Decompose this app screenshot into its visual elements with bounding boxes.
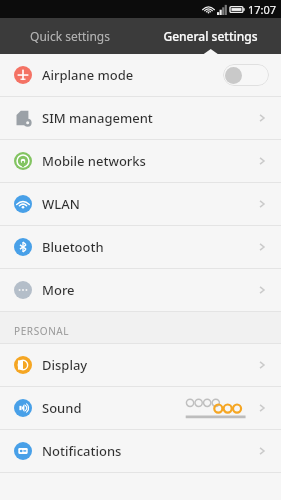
other: Open SIM management (255, 111, 269, 125)
button[interactable]: More (0, 269, 281, 311)
staticText: PERSONAL (14, 324, 70, 338)
button[interactable]: Display (0, 344, 281, 386)
staticText: General settings (163, 28, 258, 44)
other: Open WLAN (255, 197, 269, 211)
staticText: Mobile networks (42, 152, 146, 170)
button[interactable]: General settings (140, 18, 281, 54)
other: Open Notifications (255, 444, 269, 458)
staticText: Airplane mode (42, 66, 134, 84)
button[interactable]: Mobile networks (0, 140, 281, 182)
staticText: Display (42, 356, 88, 374)
button[interactable]: SIM management (0, 97, 281, 139)
other: Open Bluetooth (255, 240, 269, 254)
other: Open Display (255, 358, 269, 372)
staticText: 17:07 (248, 2, 277, 17)
staticText: Quick settings (30, 28, 110, 44)
other: Open Sound (255, 401, 269, 415)
staticText: SIM management (42, 109, 153, 127)
button[interactable]: Notifications (0, 430, 281, 472)
staticText: WLAN (42, 195, 80, 213)
button[interactable]: Airplane mode toggle (223, 64, 269, 86)
button[interactable]: Airplane mode (0, 54, 281, 96)
staticText: More (42, 281, 75, 299)
button[interactable]: Quick settings (0, 18, 140, 54)
button[interactable]: Sound (0, 387, 281, 429)
button[interactable]: Bluetooth (0, 226, 281, 268)
staticText: Notifications (42, 442, 122, 460)
staticText: Sound (42, 399, 82, 417)
other: Open More (255, 283, 269, 297)
button[interactable]: WLAN (0, 183, 281, 225)
other: Open Mobile networks (255, 154, 269, 168)
staticText: Bluetooth (42, 238, 104, 256)
